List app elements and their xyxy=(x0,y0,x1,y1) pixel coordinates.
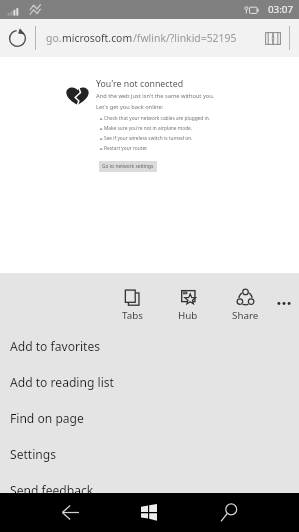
staticText: Tabs xyxy=(122,309,143,322)
button[interactable]: Settings xyxy=(0,436,299,472)
button[interactable]: Search xyxy=(204,493,252,532)
staticText: go. xyxy=(46,31,62,45)
staticText: See if your wireless switch is turned on… xyxy=(104,135,193,142)
button[interactable]: Reading view xyxy=(262,19,284,57)
button[interactable]: Add to reading list xyxy=(0,364,299,400)
button[interactable]: More options xyxy=(268,287,299,319)
button[interactable]: Share xyxy=(219,288,271,328)
button[interactable]: Find on page xyxy=(0,400,299,436)
staticText: Find on page xyxy=(10,410,84,426)
button[interactable]: Tabs xyxy=(106,288,158,328)
staticText: Hub xyxy=(178,309,198,322)
button[interactable]: Add to favorites xyxy=(0,328,299,364)
button[interactable]: Hub xyxy=(162,288,214,328)
staticText: Settings xyxy=(10,446,57,462)
staticText: Send feedback xyxy=(10,482,94,498)
button[interactable]: Go to network settings xyxy=(99,161,157,172)
button[interactable]: Start xyxy=(125,493,173,532)
staticText: 03:07 xyxy=(268,3,294,16)
staticText: Restart your router. xyxy=(104,145,148,152)
staticText: Add to reading list xyxy=(10,374,114,390)
staticText: And the web just isn't the same without … xyxy=(96,92,215,100)
button[interactable]: Send feedback xyxy=(0,472,299,508)
button[interactable]: Back xyxy=(46,493,94,532)
staticText: Go to network settings xyxy=(102,163,154,170)
staticText: Share xyxy=(232,309,259,322)
staticText: You're not connected xyxy=(96,78,184,90)
staticText: Add to favorites xyxy=(10,338,101,354)
staticText: Check that your network cables are plugg… xyxy=(104,115,210,122)
button[interactable]: Refresh xyxy=(0,19,35,57)
staticText: /fwlink/?linkid=52195 xyxy=(133,31,237,45)
staticText: Let's get you back online: xyxy=(96,103,164,111)
staticText: Make sure you're not in airplane mode. xyxy=(104,125,193,132)
staticText: microsoft.com xyxy=(62,31,133,45)
